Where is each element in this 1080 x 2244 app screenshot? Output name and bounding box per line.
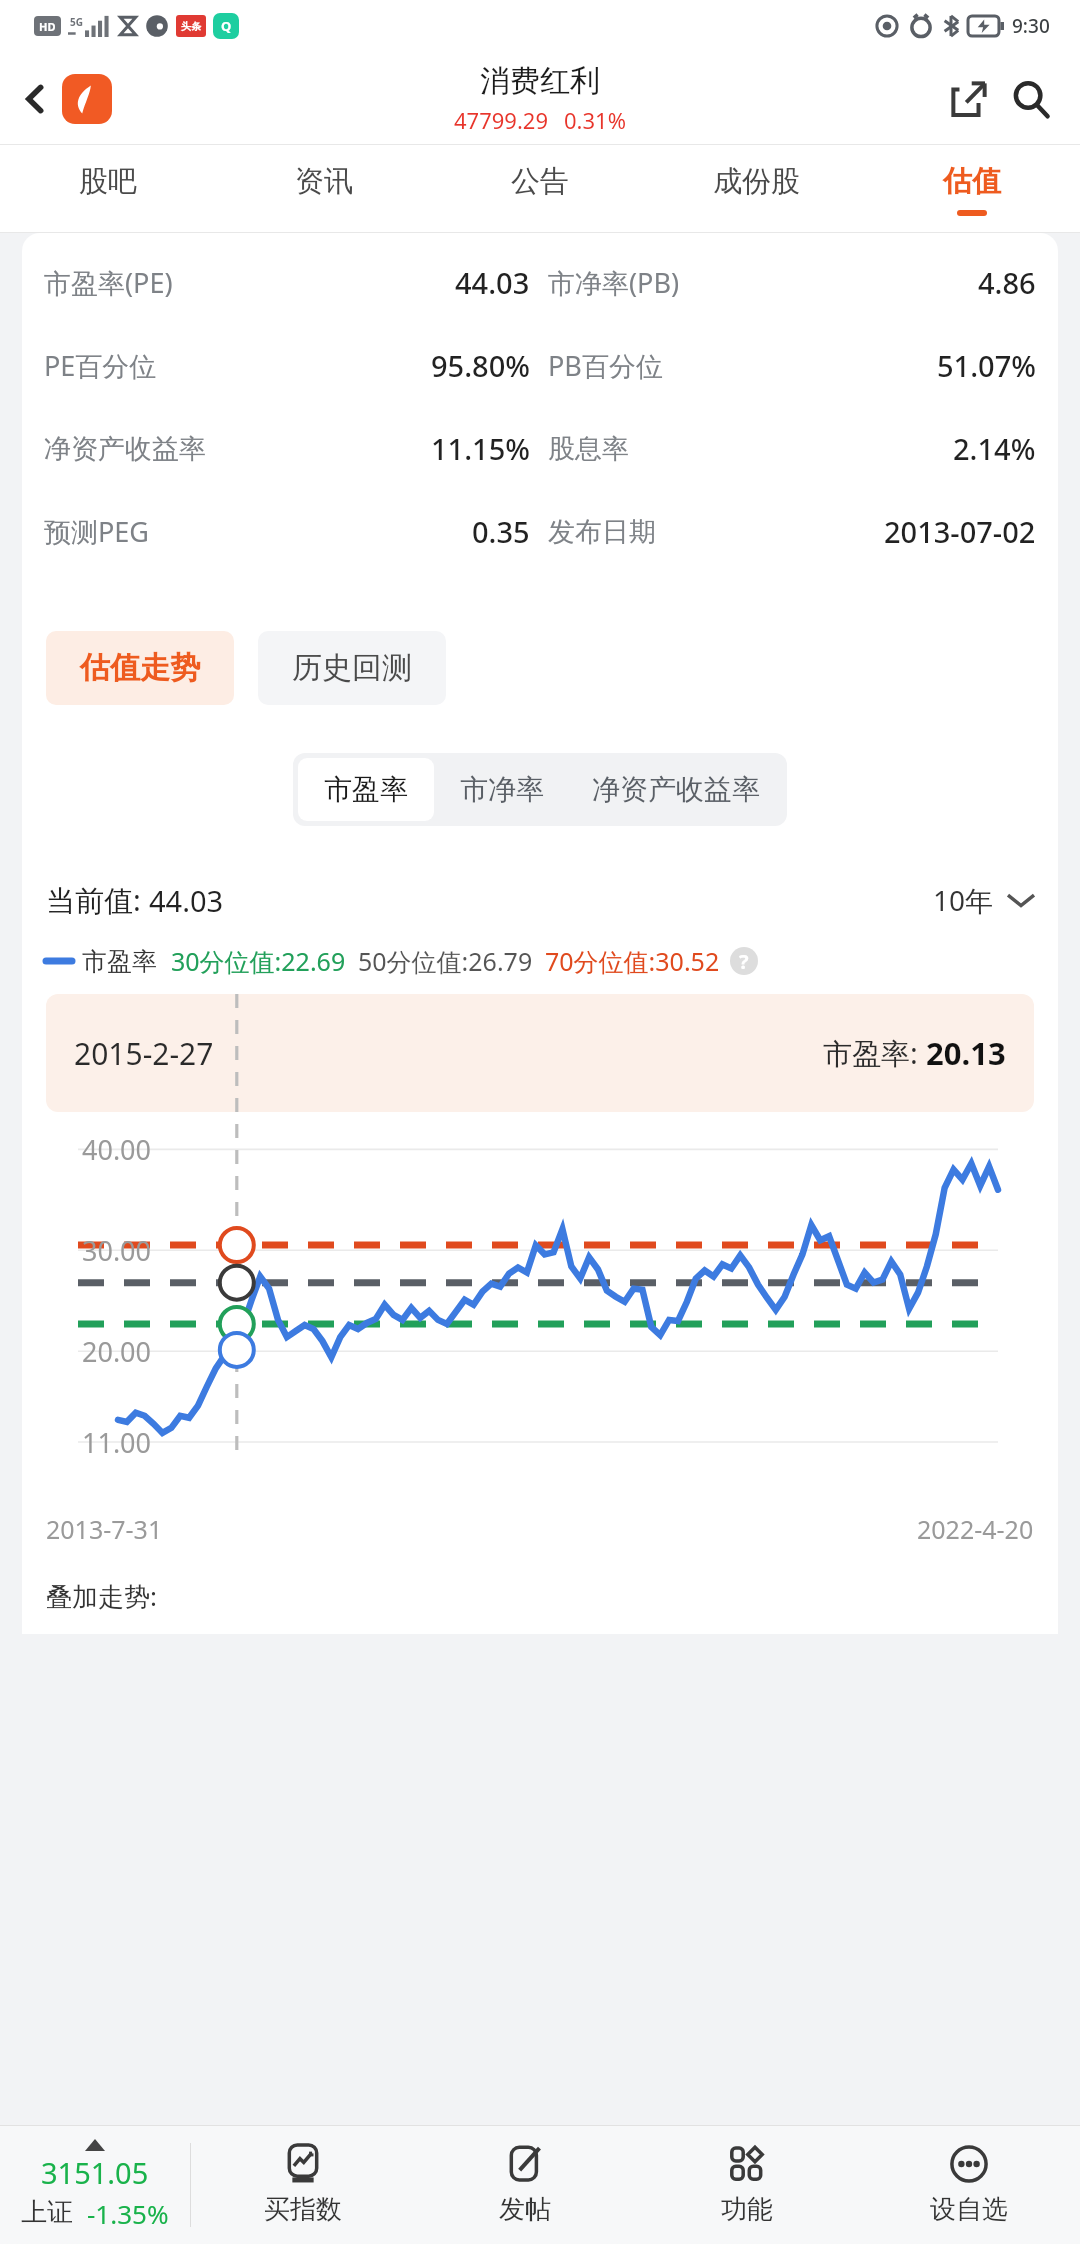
staticText: 预测PEG xyxy=(44,513,150,550)
button[interactable]: 发帖 xyxy=(414,2126,636,2244)
staticText: 30.00 xyxy=(82,1232,152,1269)
staticText: 净资产收益率 xyxy=(44,432,206,466)
button[interactable]: Back xyxy=(6,70,64,128)
staticText: 市盈率 xyxy=(324,772,408,807)
staticText: 2015-2-27 xyxy=(74,1033,214,1074)
staticText: 叠加走势: xyxy=(46,1578,157,1614)
staticText: 市盈率 xyxy=(82,946,157,977)
staticText: 消费红利 xyxy=(480,62,600,100)
staticText: 9:30 xyxy=(1012,13,1050,39)
staticText: 净资产收益率 xyxy=(592,772,760,807)
staticText: 买指数 xyxy=(264,2193,342,2226)
button[interactable]: 净资产收益率 xyxy=(570,758,782,821)
staticText: ? xyxy=(739,948,749,975)
staticText: 头条 xyxy=(181,20,201,33)
button[interactable]: 历史回测 xyxy=(258,631,446,705)
button[interactable]: 10年 xyxy=(933,881,1034,919)
button[interactable]: Share xyxy=(938,68,1000,130)
staticText: HD xyxy=(39,19,56,34)
staticText: 市盈率(PE) xyxy=(44,264,173,301)
staticText: 市净率 xyxy=(460,772,544,807)
button[interactable]: 市净率 xyxy=(434,758,570,821)
staticText: 44.03 xyxy=(455,263,530,302)
staticText: 0.31% xyxy=(564,105,626,135)
staticText: 历史回测 xyxy=(292,649,412,687)
staticText: 公告 xyxy=(511,163,569,200)
staticText: PB百分位 xyxy=(548,347,663,384)
staticText: 设自选 xyxy=(930,2193,1008,2226)
staticText: 50分位值:26.79 xyxy=(358,944,533,978)
button[interactable]: 成份股 xyxy=(648,145,864,233)
staticText: 2.14% xyxy=(953,429,1036,468)
staticText: 股息率 xyxy=(548,432,629,466)
staticText: 47799.29 xyxy=(454,105,548,135)
button[interactable]: 买指数 xyxy=(191,2126,414,2244)
button[interactable]: 股吧 xyxy=(0,145,216,233)
staticText: 70分位值:30.52 xyxy=(545,944,720,978)
staticText: 估值走势 xyxy=(80,649,200,687)
staticText: 2013-07-02 xyxy=(884,512,1036,551)
staticText: 4.86 xyxy=(978,263,1036,302)
button[interactable]: 估值 xyxy=(864,145,1080,233)
staticText: PE百分位 xyxy=(44,347,157,384)
staticText: 资讯 xyxy=(295,163,353,200)
staticText: 成份股 xyxy=(713,163,800,200)
button[interactable]: 市盈率 xyxy=(298,758,434,821)
staticText: Q xyxy=(221,17,232,35)
button[interactable]: 公告 xyxy=(432,145,648,233)
staticText: 11.00 xyxy=(82,1424,152,1461)
staticText: 股吧 xyxy=(79,163,137,200)
staticText: 44.03 xyxy=(149,881,224,920)
staticText: 40.00 xyxy=(82,1131,152,1168)
button[interactable]: 3151.05 xyxy=(0,2126,190,2244)
staticText: 10年 xyxy=(933,881,994,919)
staticText: 5G xyxy=(70,15,83,29)
staticText: 发帖 xyxy=(499,2193,551,2226)
button[interactable]: Help xyxy=(730,947,758,975)
staticText: 功能 xyxy=(721,2193,773,2226)
button[interactable]: 设自选 xyxy=(858,2126,1080,2244)
staticText: 市盈率: xyxy=(823,1033,926,1073)
staticText: 发布日期 xyxy=(548,515,656,549)
staticText: 11.15% xyxy=(431,429,530,468)
button[interactable]: 估值走势 xyxy=(46,631,234,705)
staticText: 上证 xyxy=(21,2196,73,2229)
staticText: 估值 xyxy=(943,163,1001,200)
staticText: 95.80% xyxy=(431,346,530,385)
button[interactable]: Search xyxy=(1000,68,1062,130)
staticText: 2022-4-20 xyxy=(917,1512,1034,1546)
button[interactable]: 资讯 xyxy=(216,145,432,233)
staticText: 当前值: xyxy=(46,880,149,920)
staticText: 20.00 xyxy=(82,1333,152,1370)
staticText: 30分位值:22.69 xyxy=(171,944,346,978)
staticText: -1.35% xyxy=(87,2196,169,2231)
button[interactable]: 功能 xyxy=(636,2126,858,2244)
button[interactable]: App logo xyxy=(62,74,112,124)
staticText: 0.35 xyxy=(472,512,530,551)
staticText: 3151.05 xyxy=(41,2153,149,2192)
staticText: 2013-7-31 xyxy=(46,1512,163,1546)
staticText: 市净率(PB) xyxy=(548,264,680,301)
staticText: 51.07% xyxy=(937,346,1036,385)
staticText: 20.13 xyxy=(926,1032,1006,1074)
